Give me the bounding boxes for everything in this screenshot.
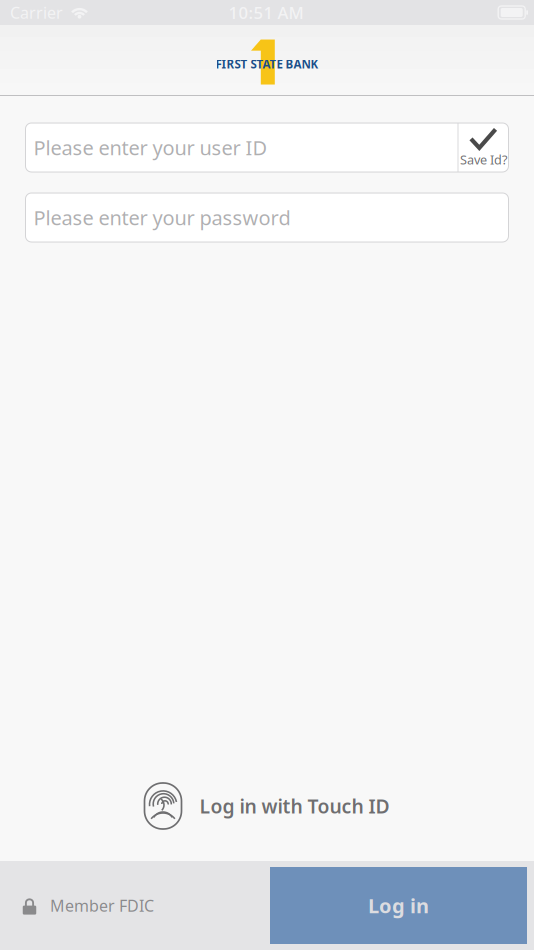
staticText: Save Id? (460, 151, 507, 168)
button[interactable]: Log in with Touch ID (144, 783, 389, 829)
staticText: Carrier (10, 2, 63, 23)
staticText: FIRST STATE BANK (215, 56, 318, 72)
button[interactable]: Log in (270, 867, 527, 944)
staticText: Log in with Touch ID (199, 793, 389, 819)
staticText: Please enter your password (33, 204, 290, 231)
staticText: Log in (368, 892, 429, 919)
staticText: Please enter your user ID (33, 134, 267, 161)
staticText: Member FDIC (50, 895, 154, 916)
button[interactable]: Save Id? (458, 123, 508, 172)
staticText: 10:51 AM (229, 1, 304, 24)
